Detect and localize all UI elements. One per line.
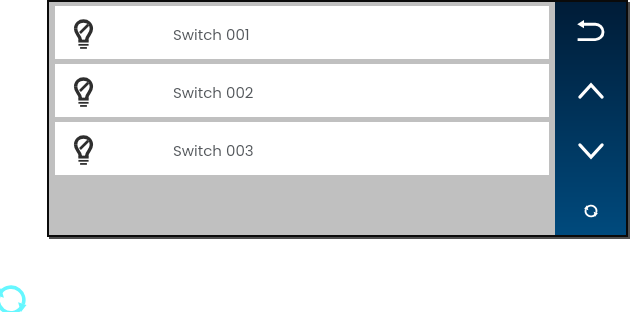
button[interactable]: Back bbox=[555, 2, 626, 63]
button[interactable]: Scroll up bbox=[555, 63, 626, 122]
button[interactable]: Switch 001 bbox=[55, 6, 549, 59]
button[interactable]: Refresh bbox=[555, 183, 626, 235]
staticText: Switch 001 bbox=[173, 24, 250, 45]
button[interactable]: Switch 003 bbox=[55, 122, 549, 175]
button[interactable]: Switch 002 bbox=[55, 64, 549, 117]
button[interactable]: Scroll down bbox=[555, 122, 626, 183]
staticText: Switch 003 bbox=[173, 140, 254, 161]
button[interactable]: Refresh bbox=[0, 284, 27, 312]
staticText: Switch 002 bbox=[173, 82, 254, 103]
